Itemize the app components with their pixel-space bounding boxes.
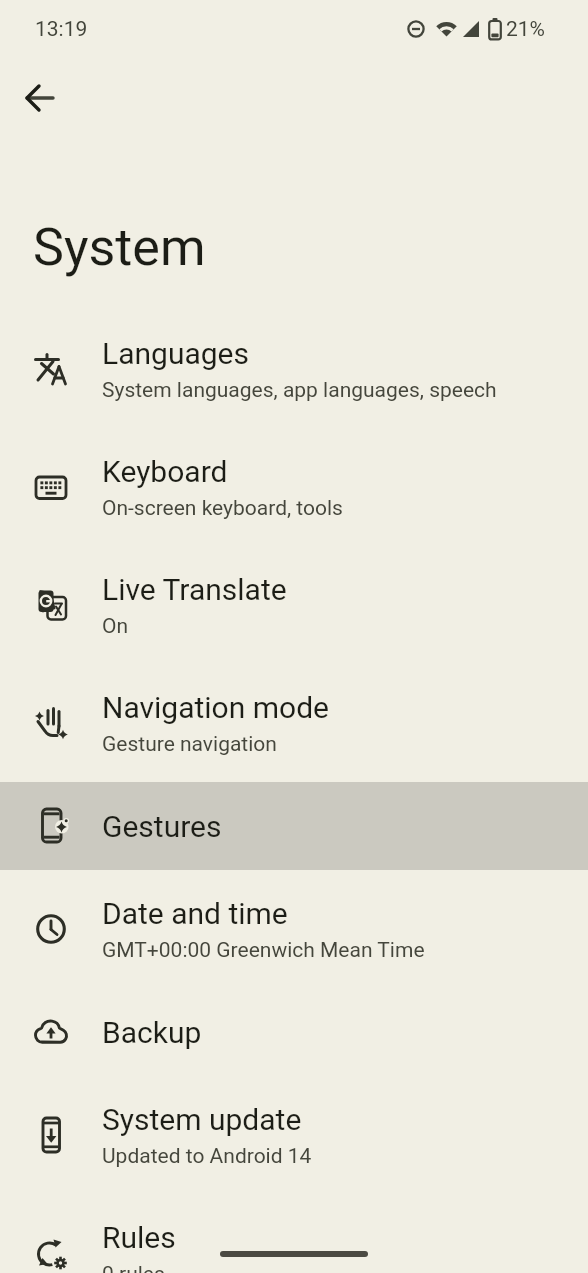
button[interactable] [16, 74, 64, 122]
staticText: 0 rules [102, 1262, 165, 1273]
staticText: System [33, 217, 206, 278]
staticText: Rules [102, 1220, 176, 1255]
staticText: On [102, 614, 129, 639]
staticText: Backup [102, 1015, 202, 1050]
button[interactable]: Gestures [0, 782, 588, 870]
staticText: Navigation mode [102, 690, 329, 725]
button[interactable]: Date and time [0, 870, 588, 988]
staticText: System languages, app languages, speech [102, 378, 497, 403]
staticText: Gesture navigation [102, 732, 277, 757]
staticText: Keyboard [102, 454, 228, 489]
button[interactable]: Navigation mode [0, 664, 588, 782]
staticText: Languages [102, 336, 249, 371]
button[interactable]: Live Translate [0, 546, 588, 664]
button[interactable]: System update [0, 1076, 588, 1194]
staticText: Date and time [102, 896, 288, 931]
staticText: GMT+00:00 Greenwich Mean Time [102, 938, 425, 963]
staticText: System update [102, 1102, 302, 1137]
staticText: On-screen keyboard, tools [102, 496, 343, 521]
staticText: 21% [506, 17, 545, 42]
button[interactable]: Backup [0, 988, 588, 1076]
staticText: Gestures [102, 809, 222, 844]
button[interactable]: Languages [0, 310, 588, 428]
staticText: Updated to Android 14 [102, 1144, 312, 1169]
staticText: 13:19 [35, 17, 88, 42]
button[interactable]: Rules [0, 1194, 588, 1273]
staticText: Live Translate [102, 572, 287, 607]
button[interactable]: Keyboard [0, 428, 588, 546]
